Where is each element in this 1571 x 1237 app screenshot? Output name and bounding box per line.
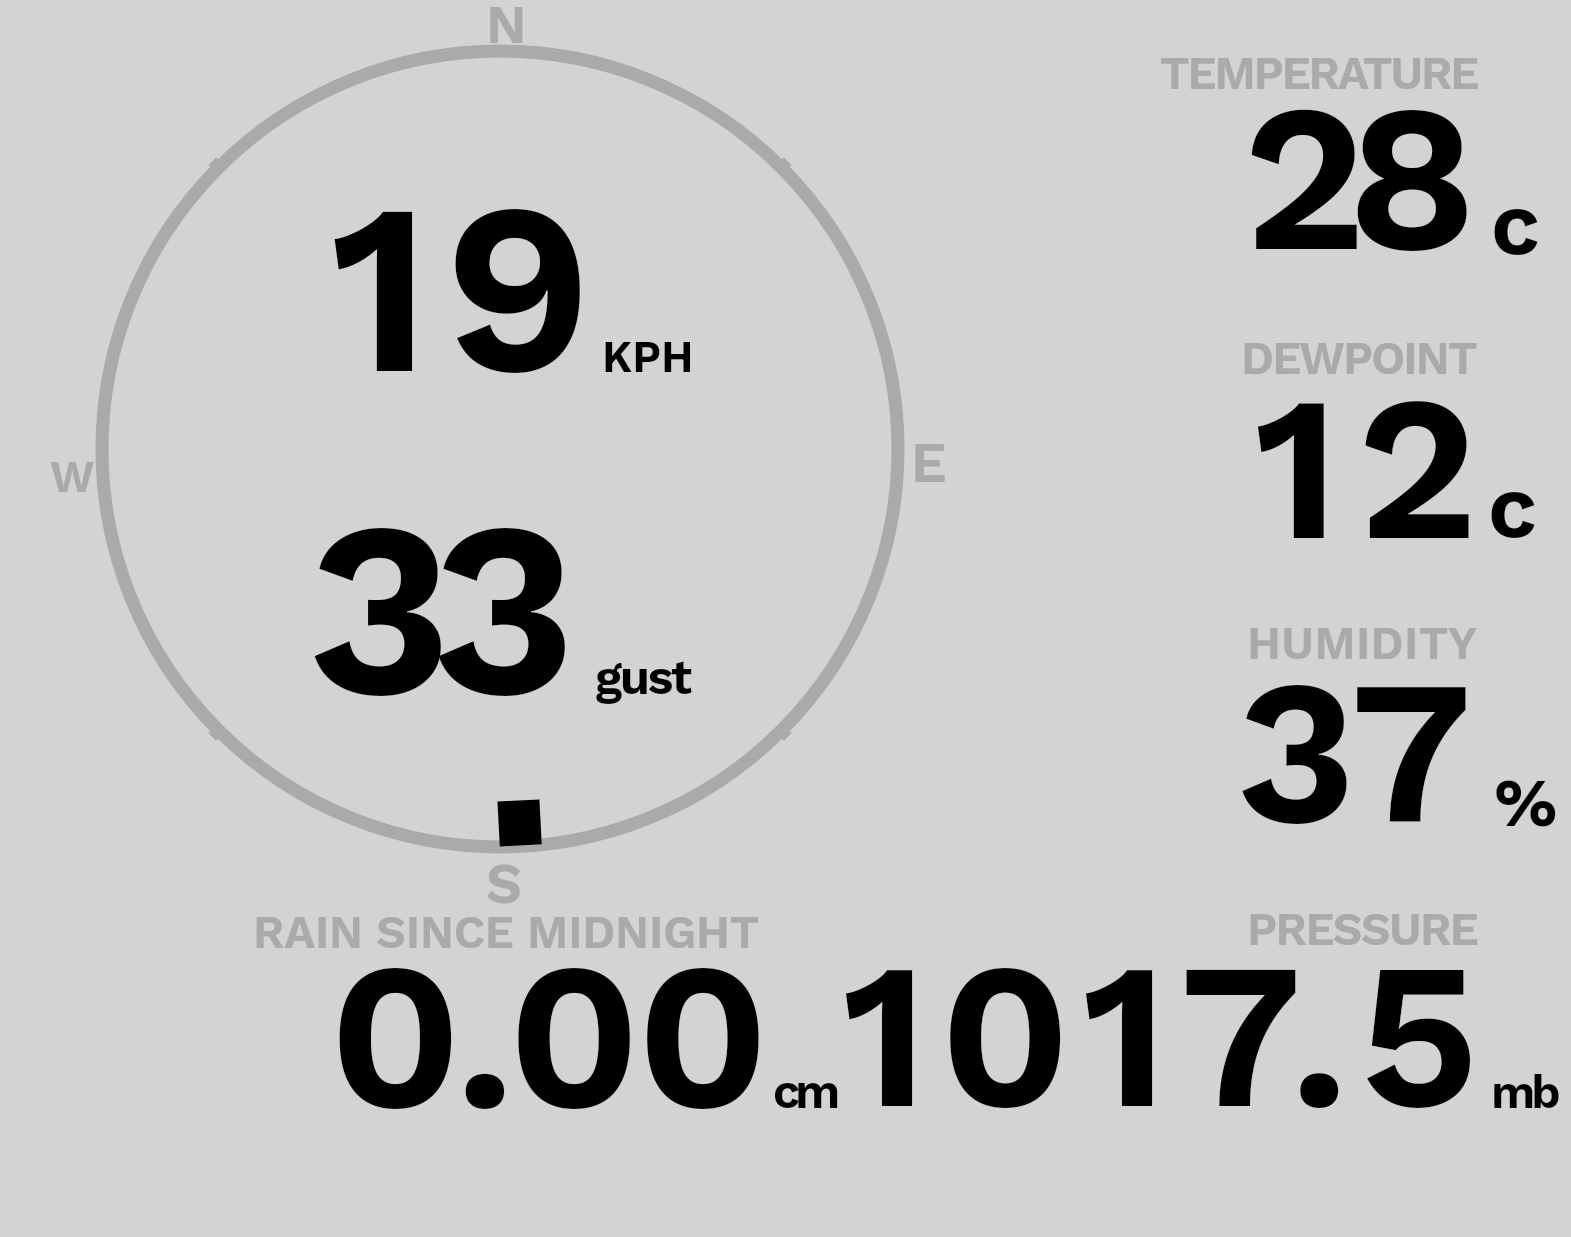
staticText: TEMPERATURE [1160, 46, 1478, 100]
button[interactable]: Temperature 28 degrees Celsius [1140, 36, 1560, 268]
button[interactable]: Humidity 37 percent [1140, 606, 1560, 838]
staticText: 1017.5 [842, 915, 1491, 1155]
staticText: S [486, 851, 523, 917]
staticText: cm [773, 1063, 836, 1119]
staticText: c [1488, 456, 1538, 558]
staticText: 37 [1236, 632, 1473, 871]
button[interactable]: Wind 19 KPH gusting 33, direction south [96, 44, 906, 854]
staticText: 19 [330, 148, 606, 430]
staticText: % [1494, 762, 1558, 843]
button[interactable]: Rain since midnight 0.00 cm [240, 892, 820, 1124]
button[interactable]: Pressure 1017.5 millibars [830, 892, 1560, 1124]
staticText: KPH [602, 331, 694, 383]
staticText: gust [595, 648, 690, 705]
staticText: c [1491, 173, 1541, 275]
staticText: PRESSURE [1247, 902, 1478, 956]
staticText: 12 [1254, 348, 1496, 587]
staticText: W [50, 450, 95, 503]
staticText: 33 [307, 464, 555, 754]
staticText: 28 [1243, 56, 1459, 300]
staticText: RAIN SINCE MIDNIGHT [253, 905, 760, 959]
staticText: N [486, 0, 527, 57]
button[interactable]: Dewpoint 12 degrees Celsius [1140, 320, 1560, 552]
staticText: DEWPOINT [1241, 331, 1476, 385]
staticText: E [911, 430, 947, 496]
staticText: HUMIDITY [1247, 616, 1478, 670]
staticText: mb [1491, 1064, 1557, 1119]
staticText: 0.00 [329, 914, 766, 1158]
